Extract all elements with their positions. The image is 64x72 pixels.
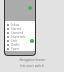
staticText: Drafts	[11, 43, 20, 47]
staticText: lets users switch	[20, 64, 44, 68]
button[interactable]: Add	[28, 6, 32, 10]
button[interactable]: Sent	[5, 39, 35, 43]
staticText: Starred	[11, 27, 22, 31]
staticText: Sent	[11, 39, 18, 43]
staticText: Inbox	[11, 23, 20, 27]
button[interactable]: Snoozed	[5, 31, 35, 35]
button[interactable]: Starred	[5, 27, 35, 31]
button[interactable]: Important	[5, 35, 35, 39]
button[interactable]: Spam	[5, 47, 35, 51]
staticText: Spam	[11, 47, 19, 51]
staticText: Snoozed	[11, 31, 24, 35]
button[interactable]: Drafts	[5, 43, 35, 47]
button[interactable]: Compose	[30, 39, 34, 43]
staticText: Navigation drawer	[19, 58, 46, 62]
staticText: Important	[11, 35, 26, 39]
button[interactable]: Inbox	[5, 23, 35, 27]
